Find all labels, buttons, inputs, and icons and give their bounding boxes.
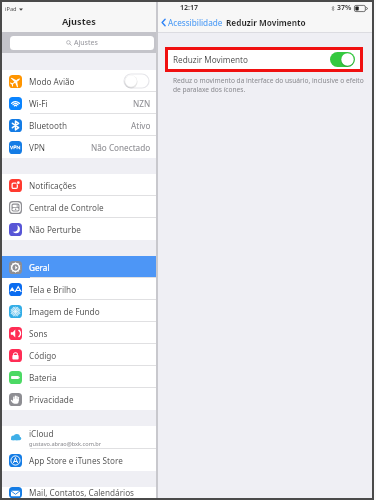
staticText: Mail, Contatos, Calendários [29, 487, 135, 498]
staticText: Bateria [29, 372, 57, 383]
staticText: Geral [29, 262, 50, 273]
staticText: iPad [5, 5, 17, 13]
staticText: App Store e iTunes Store [29, 455, 123, 466]
staticText: Código [29, 350, 57, 361]
staticText: Sons [29, 328, 48, 339]
staticText: Ajustes [62, 15, 96, 28]
staticText: Reduzir Movimento [226, 17, 306, 28]
button[interactable]: Buscar ajustes [10, 36, 154, 50]
button[interactable]: App Store e iTunes Store [2, 449, 156, 471]
staticText: Central de Controle [29, 202, 104, 213]
button[interactable]: Bluetooth [2, 114, 156, 136]
staticText: 12:17 [180, 3, 198, 13]
staticText: Reduz o movimento da interface do usuári… [173, 76, 365, 94]
staticText: Tela e Brilho [29, 284, 77, 295]
button[interactable]: Código [2, 344, 156, 366]
button[interactable]: Ativado [330, 52, 355, 67]
staticText: Reduzir Movimento [173, 54, 249, 65]
staticText: Ativo [131, 120, 151, 131]
staticText: 37% [337, 3, 352, 13]
button[interactable]: Sons [2, 322, 156, 344]
staticText: Imagem de Fundo [29, 306, 100, 317]
staticText: Notificações [29, 180, 77, 191]
button[interactable]: Imagem de Fundo [2, 300, 156, 322]
staticText: gustavo.abrao@bxk.com.br [29, 440, 102, 448]
staticText: Acessibilidade [168, 17, 223, 28]
button[interactable]: iCloud [2, 426, 156, 449]
button[interactable]: Acessibilidade [161, 17, 223, 28]
button[interactable]: Modo Avião [2, 70, 156, 92]
button[interactable]: Mail, Contatos, Calendários [2, 487, 156, 498]
staticText: Não Perturbe [29, 224, 81, 235]
button[interactable]: Notificações [2, 174, 156, 196]
button[interactable]: Wi-Fi [2, 92, 156, 114]
button[interactable]: Reduzir Movimento [168, 50, 360, 69]
staticText: Ajustes [74, 38, 98, 48]
button[interactable]: Tela e Brilho [2, 278, 156, 300]
button[interactable]: Bateria [2, 366, 156, 388]
button[interactable]: Desativado [124, 74, 149, 88]
staticText: NZN [133, 98, 151, 109]
staticText: Privacidade [29, 394, 74, 405]
staticText: Bluetooth [29, 120, 67, 131]
staticText: Wi-Fi [29, 98, 48, 109]
button[interactable]: Não Perturbe [2, 218, 156, 240]
staticText: VPN [29, 142, 46, 153]
button[interactable]: Geral [2, 256, 156, 278]
staticText: Modo Avião [29, 76, 75, 87]
button[interactable]: Central de Controle [2, 196, 156, 218]
staticText: iCloud [29, 428, 54, 439]
button[interactable]: Privacidade [2, 388, 156, 410]
staticText: Não Conectado [91, 142, 151, 153]
button[interactable]: VPN [2, 136, 156, 158]
